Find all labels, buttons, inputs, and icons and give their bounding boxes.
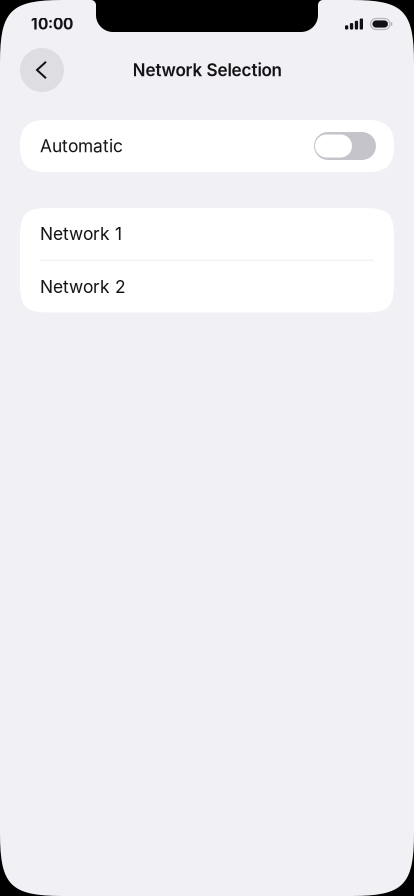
staticText: Network 2: [40, 276, 126, 297]
button[interactable]: Back: [20, 48, 64, 92]
button[interactable]: Network 1: [20, 208, 394, 259]
button[interactable]: Network 2: [20, 261, 394, 312]
staticText: Network Selection: [132, 60, 281, 80]
staticText: 10:00: [31, 15, 73, 33]
staticText: Automatic: [40, 135, 123, 156]
button[interactable]: Automatic: [20, 120, 394, 172]
staticText: Network 1: [40, 223, 122, 244]
